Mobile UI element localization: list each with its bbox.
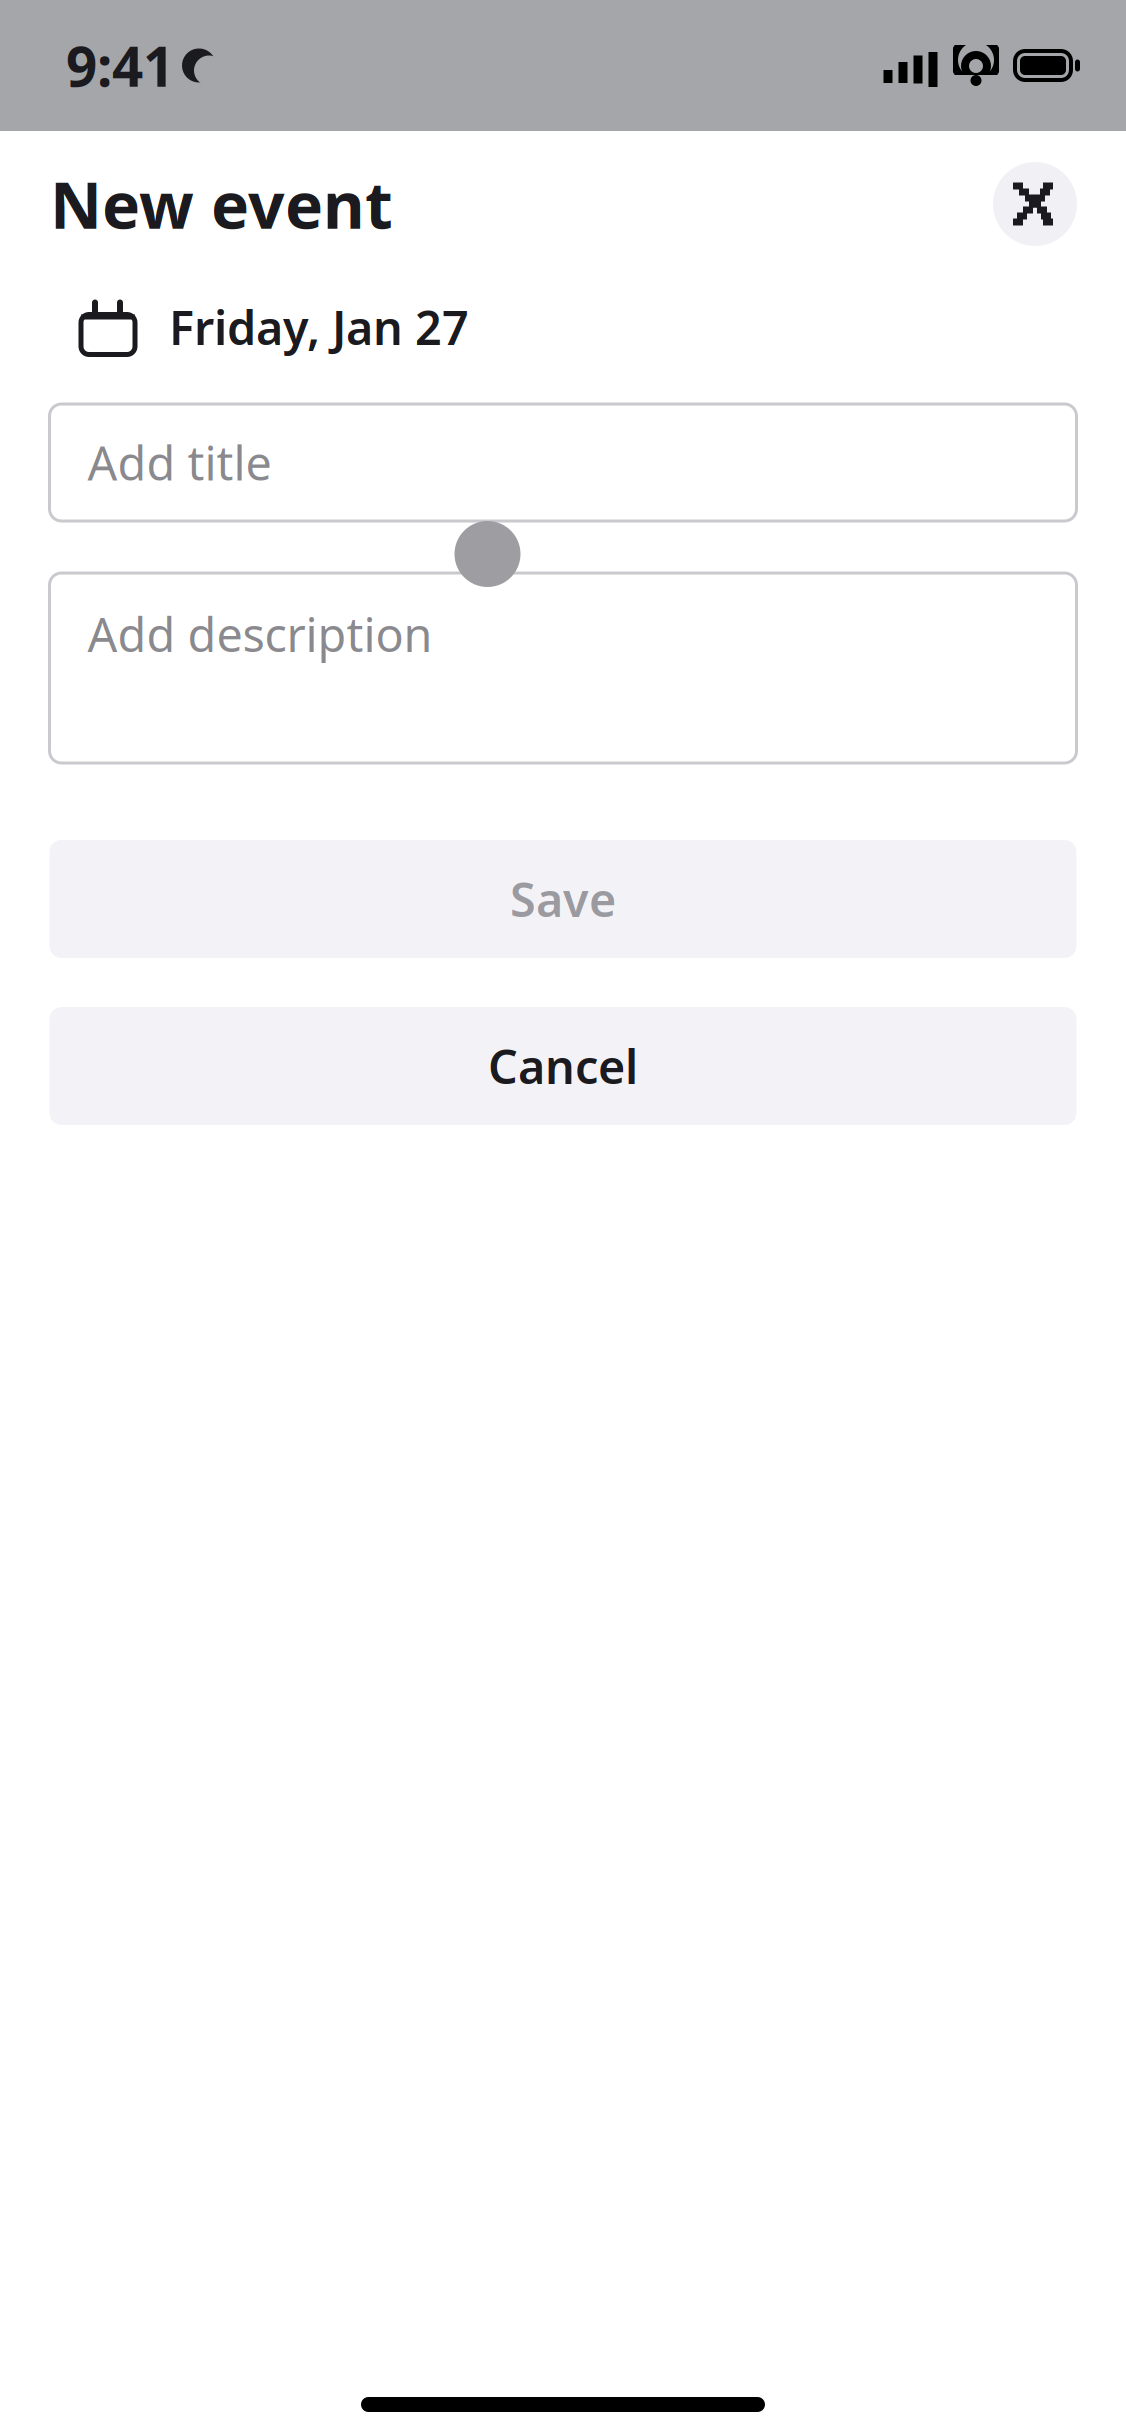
button[interactable]: Add title (49, 404, 1076, 521)
staticText: Friday, Jan 27 (169, 296, 469, 358)
button[interactable]: Friday, Jan 27 (0, 277, 1126, 377)
staticText: Save (510, 868, 616, 930)
staticText: Add title (87, 431, 271, 493)
button[interactable]: Close (993, 162, 1077, 246)
button[interactable]: Save (49, 840, 1076, 958)
staticText: Add description (87, 603, 432, 665)
button[interactable]: Cancel (49, 1007, 1076, 1125)
staticText: 9:41 (66, 29, 174, 102)
staticText: Cancel (488, 1035, 638, 1097)
staticText: New event (50, 161, 393, 246)
button[interactable]: Add description (49, 573, 1076, 763)
